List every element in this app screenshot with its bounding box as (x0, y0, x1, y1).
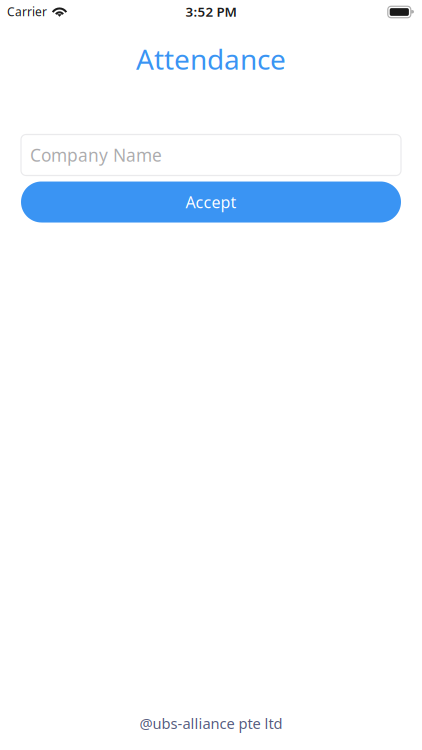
staticText: 3:52 PM (185, 3, 236, 20)
staticText: Company Name (30, 143, 162, 166)
button[interactable]: Accept (21, 181, 401, 222)
staticText: Accept (185, 191, 236, 213)
staticText: @ubs-alliance pte ltd (139, 713, 282, 733)
staticText: Attendance (136, 40, 286, 78)
staticText: Carrier (7, 3, 47, 19)
